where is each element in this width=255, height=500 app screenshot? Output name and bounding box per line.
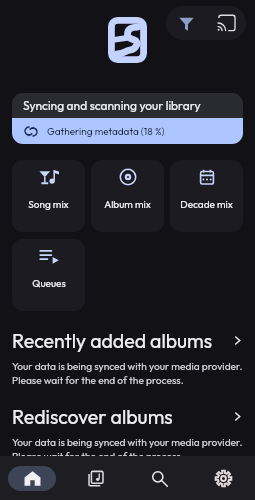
button[interactable]: Search [127, 456, 191, 500]
button[interactable]: Recently added albums [0, 325, 255, 355]
button[interactable]: Syncing and scanning your library [12, 93, 243, 144]
button[interactable]: Filter [167, 6, 205, 40]
button[interactable]: Cast to device [207, 6, 245, 40]
staticText: Song mix [28, 198, 69, 211]
staticText: Your data is being synced with your medi… [12, 360, 243, 387]
staticText: Rediscover albums [12, 404, 173, 429]
button[interactable]: Rediscover albums [0, 401, 255, 431]
button[interactable]: Decade mix [170, 160, 243, 232]
staticText: Recently added albums [12, 328, 213, 353]
staticText: Syncing and scanning your library [23, 98, 201, 113]
button[interactable]: Song mix [12, 160, 85, 232]
button[interactable]: Home [0, 456, 63, 500]
staticText: Decade mix [180, 198, 233, 211]
button[interactable]: Library [63, 456, 127, 500]
staticText: Album mix [104, 198, 151, 211]
button[interactable]: Settings [191, 456, 255, 500]
staticText: Queues [32, 277, 66, 290]
button[interactable]: Queues [12, 239, 85, 311]
button[interactable]: Album mix [91, 160, 164, 232]
staticText: Your data is being synced with your medi… [12, 436, 243, 463]
staticText: Gathering metadata (18 %) [47, 125, 165, 138]
